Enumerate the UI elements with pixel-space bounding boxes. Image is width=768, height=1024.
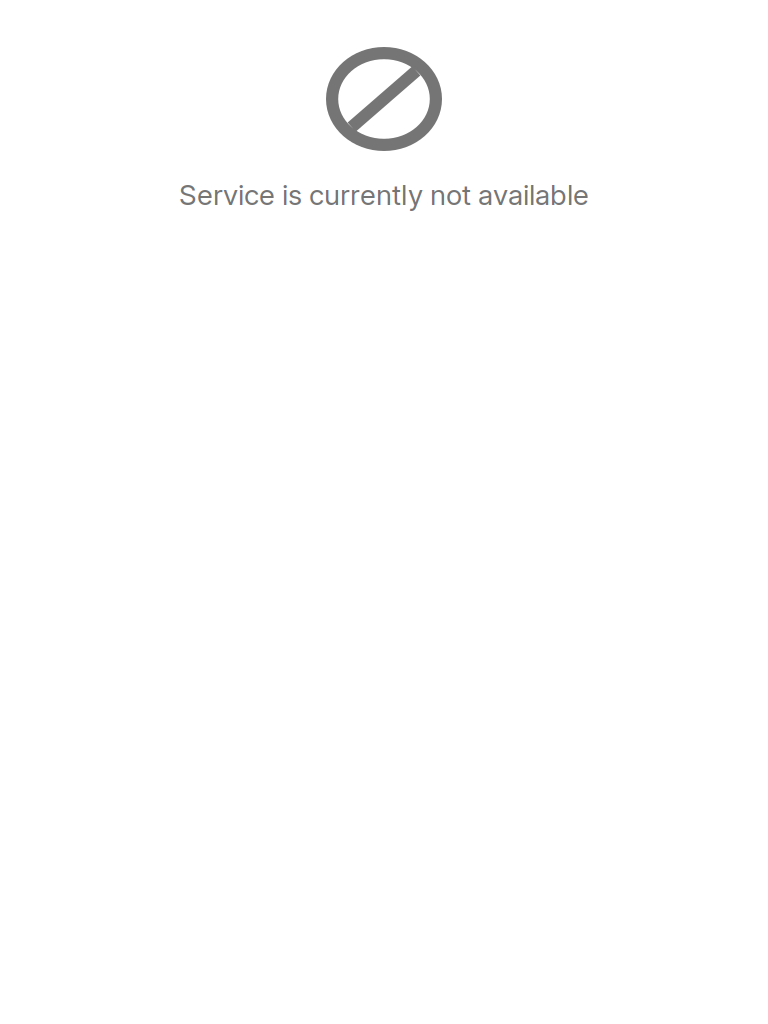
- staticText: Service is currently not available: [179, 178, 589, 212]
